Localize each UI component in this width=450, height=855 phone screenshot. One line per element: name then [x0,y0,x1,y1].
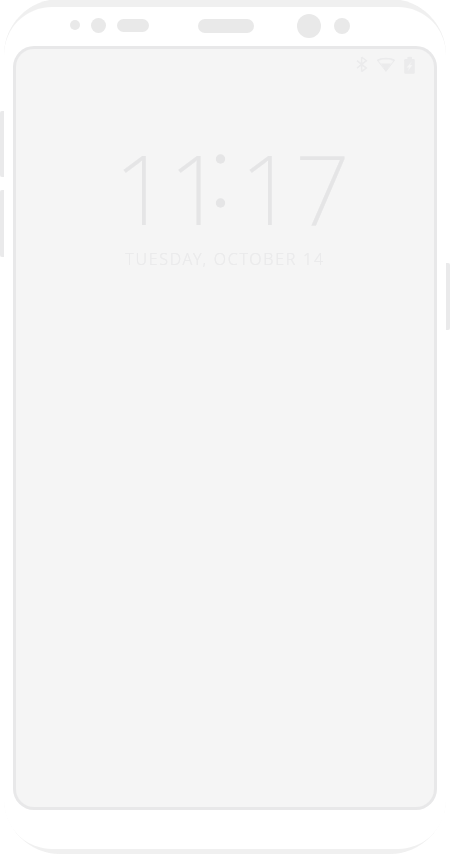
button[interactable]: Volume up [0,111,9,177]
staticText: TUESDAY, OCTOBER 14 [125,248,325,270]
button[interactable]: Battery charging [400,53,424,77]
staticText: 11 [114,122,224,253]
button[interactable]: Power [441,263,450,330]
button[interactable]: Volume down [0,190,9,257]
button[interactable]: Bluetooth [353,53,375,75]
button[interactable]: Wi-Fi [372,53,400,75]
staticText: 17 [240,122,350,253]
